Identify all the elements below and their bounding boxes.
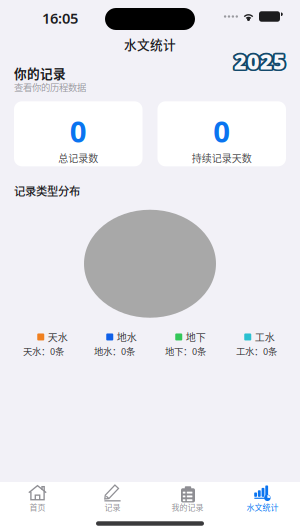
staticText: 2025 xyxy=(236,47,288,75)
staticText: 工水 xyxy=(255,330,275,344)
staticText: 2025 xyxy=(235,48,287,76)
button[interactable]: 记录 xyxy=(75,476,150,513)
staticText: 地下：0条 xyxy=(165,344,206,358)
staticText: 查看你的历程数据 xyxy=(14,80,86,94)
staticText: 2025 xyxy=(236,46,288,75)
button[interactable]: 首页 xyxy=(0,476,75,513)
staticText: 2025 xyxy=(232,46,284,75)
staticText: 0 xyxy=(70,112,87,151)
staticText: 2025 xyxy=(234,49,286,77)
staticText: 2025 xyxy=(233,46,285,74)
staticText: 记录 xyxy=(104,501,120,513)
staticText: 2025 xyxy=(232,48,284,76)
staticText: 水文统计 xyxy=(124,35,176,53)
button[interactable]: 0 xyxy=(157,101,286,166)
button[interactable]: 我的记录 xyxy=(150,476,225,513)
staticText: 2025 xyxy=(233,48,285,76)
staticText: 天水 xyxy=(48,330,68,344)
staticText: 地下 xyxy=(186,330,206,344)
staticText: 2025 xyxy=(232,47,284,75)
button[interactable]: 水文统计 xyxy=(225,476,300,513)
staticText: 2025 xyxy=(234,45,286,74)
staticText: 2025 xyxy=(235,46,287,74)
staticText: 0 xyxy=(213,112,230,151)
staticText: 首页 xyxy=(29,501,45,513)
staticText: 2025 xyxy=(236,48,288,76)
staticText: 水文统计 xyxy=(246,501,278,513)
staticText: 记录类型分布 xyxy=(14,182,80,199)
staticText: 你的记录 xyxy=(14,64,66,82)
staticText: 总记录数 xyxy=(58,151,98,165)
staticText: 工水：0条 xyxy=(236,344,277,358)
staticText: 地水：0条 xyxy=(94,344,135,358)
staticText: 地水 xyxy=(117,330,137,344)
staticText: 天水：0条 xyxy=(23,344,64,358)
staticText: 2025 xyxy=(234,47,286,75)
staticText: 持续记录天数 xyxy=(192,151,252,165)
staticText: 我的记录 xyxy=(171,501,203,513)
button[interactable]: 0 xyxy=(14,101,142,166)
staticText: 16:05 xyxy=(42,8,78,28)
